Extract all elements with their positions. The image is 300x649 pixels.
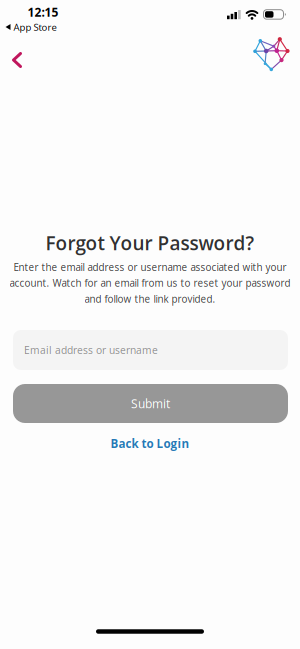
button[interactable]: Back to App Store: [5, 20, 56, 34]
staticText: Submit: [131, 395, 170, 412]
button[interactable]: Back to Login: [106, 432, 193, 455]
staticText: Back to Login: [110, 436, 189, 451]
staticText: and follow the link provided.: [84, 292, 215, 306]
button[interactable]: Back: [4, 44, 30, 76]
staticText: 12:15: [27, 4, 58, 20]
staticText: Email address or username: [24, 343, 158, 357]
button[interactable]: Email address or username: [13, 330, 288, 370]
staticText: Enter the email address or username asso…: [13, 260, 286, 274]
button[interactable]: Submit: [13, 384, 288, 423]
staticText: Forgot Your Password?: [45, 230, 254, 256]
staticText: account. Watch for an email from us to r…: [9, 276, 290, 290]
staticText: App Store: [13, 20, 56, 34]
